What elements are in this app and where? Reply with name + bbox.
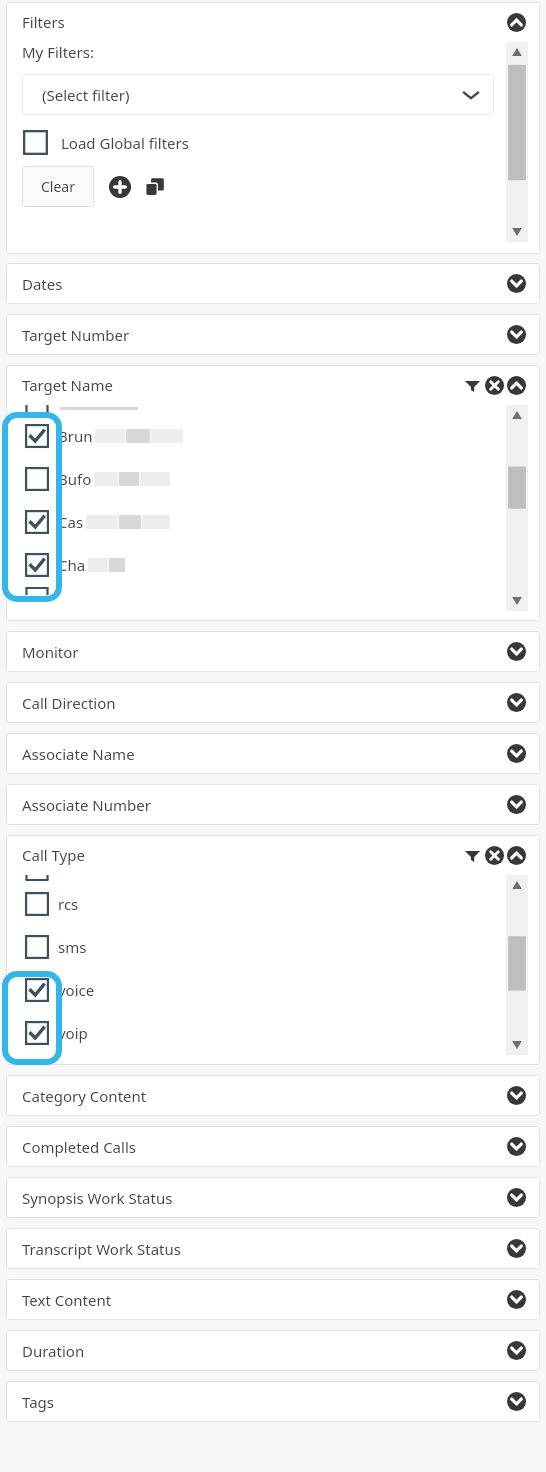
staticText: Tags [22, 1392, 507, 1412]
staticText: Cas [58, 512, 84, 532]
button[interactable]: Expand section [507, 693, 526, 712]
button[interactable]: Expand section [507, 1392, 526, 1411]
button[interactable]: Checked [24, 543, 506, 586]
staticText: rcs [58, 894, 79, 914]
button[interactable]: Unchecked [24, 882, 506, 925]
button[interactable]: Associate Number [6, 784, 540, 825]
button[interactable]: Copy filter [144, 176, 166, 198]
button[interactable]: Expand section [507, 325, 526, 344]
button[interactable]: Filters [6, 2, 540, 42]
button[interactable]: Clear selection [485, 846, 504, 865]
button[interactable]: Call Type [6, 835, 540, 875]
button[interactable]: Expand section [507, 1086, 526, 1105]
button[interactable]: Checked [24, 423, 50, 449]
staticText: Filters [22, 12, 507, 32]
staticText: Completed Calls [22, 1137, 507, 1157]
staticText: Target Name [22, 375, 463, 395]
button[interactable]: Expand section [507, 642, 526, 661]
staticText: Text Content [22, 1290, 507, 1310]
button[interactable]: Expand section [507, 274, 526, 293]
button[interactable]: Expand section [507, 1239, 526, 1258]
button[interactable]: Checked [24, 968, 506, 1011]
button[interactable]: Tags [6, 1381, 540, 1422]
staticText: Dates [22, 274, 507, 294]
button[interactable]: Checked [24, 509, 50, 535]
button[interactable]: Call Direction [6, 682, 540, 723]
button[interactable]: Associate Name [6, 733, 540, 774]
button[interactable]: Unchecked [24, 457, 506, 500]
staticText: My Filters: [22, 42, 94, 62]
staticText: voip [58, 1023, 88, 1043]
staticText: Monitor [22, 642, 507, 662]
staticText: Target Number [22, 325, 507, 345]
button[interactable]: Clear [22, 166, 94, 207]
button[interactable]: Expand section [507, 744, 526, 763]
button[interactable]: Collapse section [507, 846, 526, 865]
button[interactable]: (Select filter) [22, 74, 494, 115]
button[interactable]: Checked [24, 552, 50, 578]
button[interactable]: Unchecked [24, 934, 50, 960]
staticText: Transcript Work Status [22, 1239, 507, 1259]
staticText: Associate Name [22, 744, 507, 764]
button[interactable]: Checked [24, 500, 506, 543]
staticText: Call Direction [22, 693, 507, 713]
button[interactable]: Checked [24, 977, 50, 1003]
button[interactable]: Unchecked [22, 129, 49, 156]
button[interactable]: Filter list [463, 376, 482, 395]
button[interactable]: Target Name [6, 365, 540, 405]
button[interactable]: Unchecked [22, 129, 189, 156]
staticText: Brun [58, 426, 93, 446]
staticText: Cha [58, 555, 86, 575]
button[interactable]: Checked [24, 1011, 506, 1054]
staticText: Bufo [58, 469, 92, 489]
button[interactable]: Category Content [6, 1075, 540, 1116]
button[interactable]: Duration [6, 1330, 540, 1371]
button[interactable]: Monitor [6, 631, 540, 672]
button[interactable]: Expand section [507, 795, 526, 814]
button[interactable]: Dates [6, 263, 540, 304]
button[interactable]: Expand section [507, 1341, 526, 1360]
staticText: Load Global filters [61, 133, 189, 153]
staticText: Associate Number [22, 795, 507, 815]
button[interactable]: Completed Calls [6, 1126, 540, 1167]
button[interactable]: Checked [24, 1020, 50, 1046]
button[interactable]: Expand section [507, 1188, 526, 1207]
button[interactable]: Checked [24, 414, 506, 457]
button[interactable]: Expand section [507, 1290, 526, 1309]
button[interactable]: Unchecked [24, 925, 506, 968]
staticText: Category Content [22, 1086, 507, 1106]
staticText: Duration [22, 1341, 507, 1361]
button[interactable]: Expand section [507, 1137, 526, 1156]
button[interactable]: Target Number [6, 314, 540, 355]
button[interactable]: Unchecked [24, 466, 50, 492]
staticText: (Select filter) [42, 85, 462, 105]
button[interactable]: Synopsis Work Status [6, 1177, 540, 1218]
button[interactable]: Collapse section [507, 13, 526, 32]
button[interactable]: Filter list [463, 846, 482, 865]
staticText: Synopsis Work Status [22, 1188, 507, 1208]
button[interactable]: Transcript Work Status [6, 1228, 540, 1269]
button[interactable]: Add filter [109, 176, 131, 198]
button[interactable]: Collapse section [507, 376, 526, 395]
button[interactable]: Unchecked [24, 891, 50, 917]
button[interactable]: Text Content [6, 1279, 540, 1320]
staticText: sms [58, 937, 87, 957]
staticText: Clear [41, 177, 75, 196]
staticText: Call Type [22, 845, 463, 865]
staticText: voice [58, 980, 95, 1000]
button[interactable]: Clear selection [485, 376, 504, 395]
